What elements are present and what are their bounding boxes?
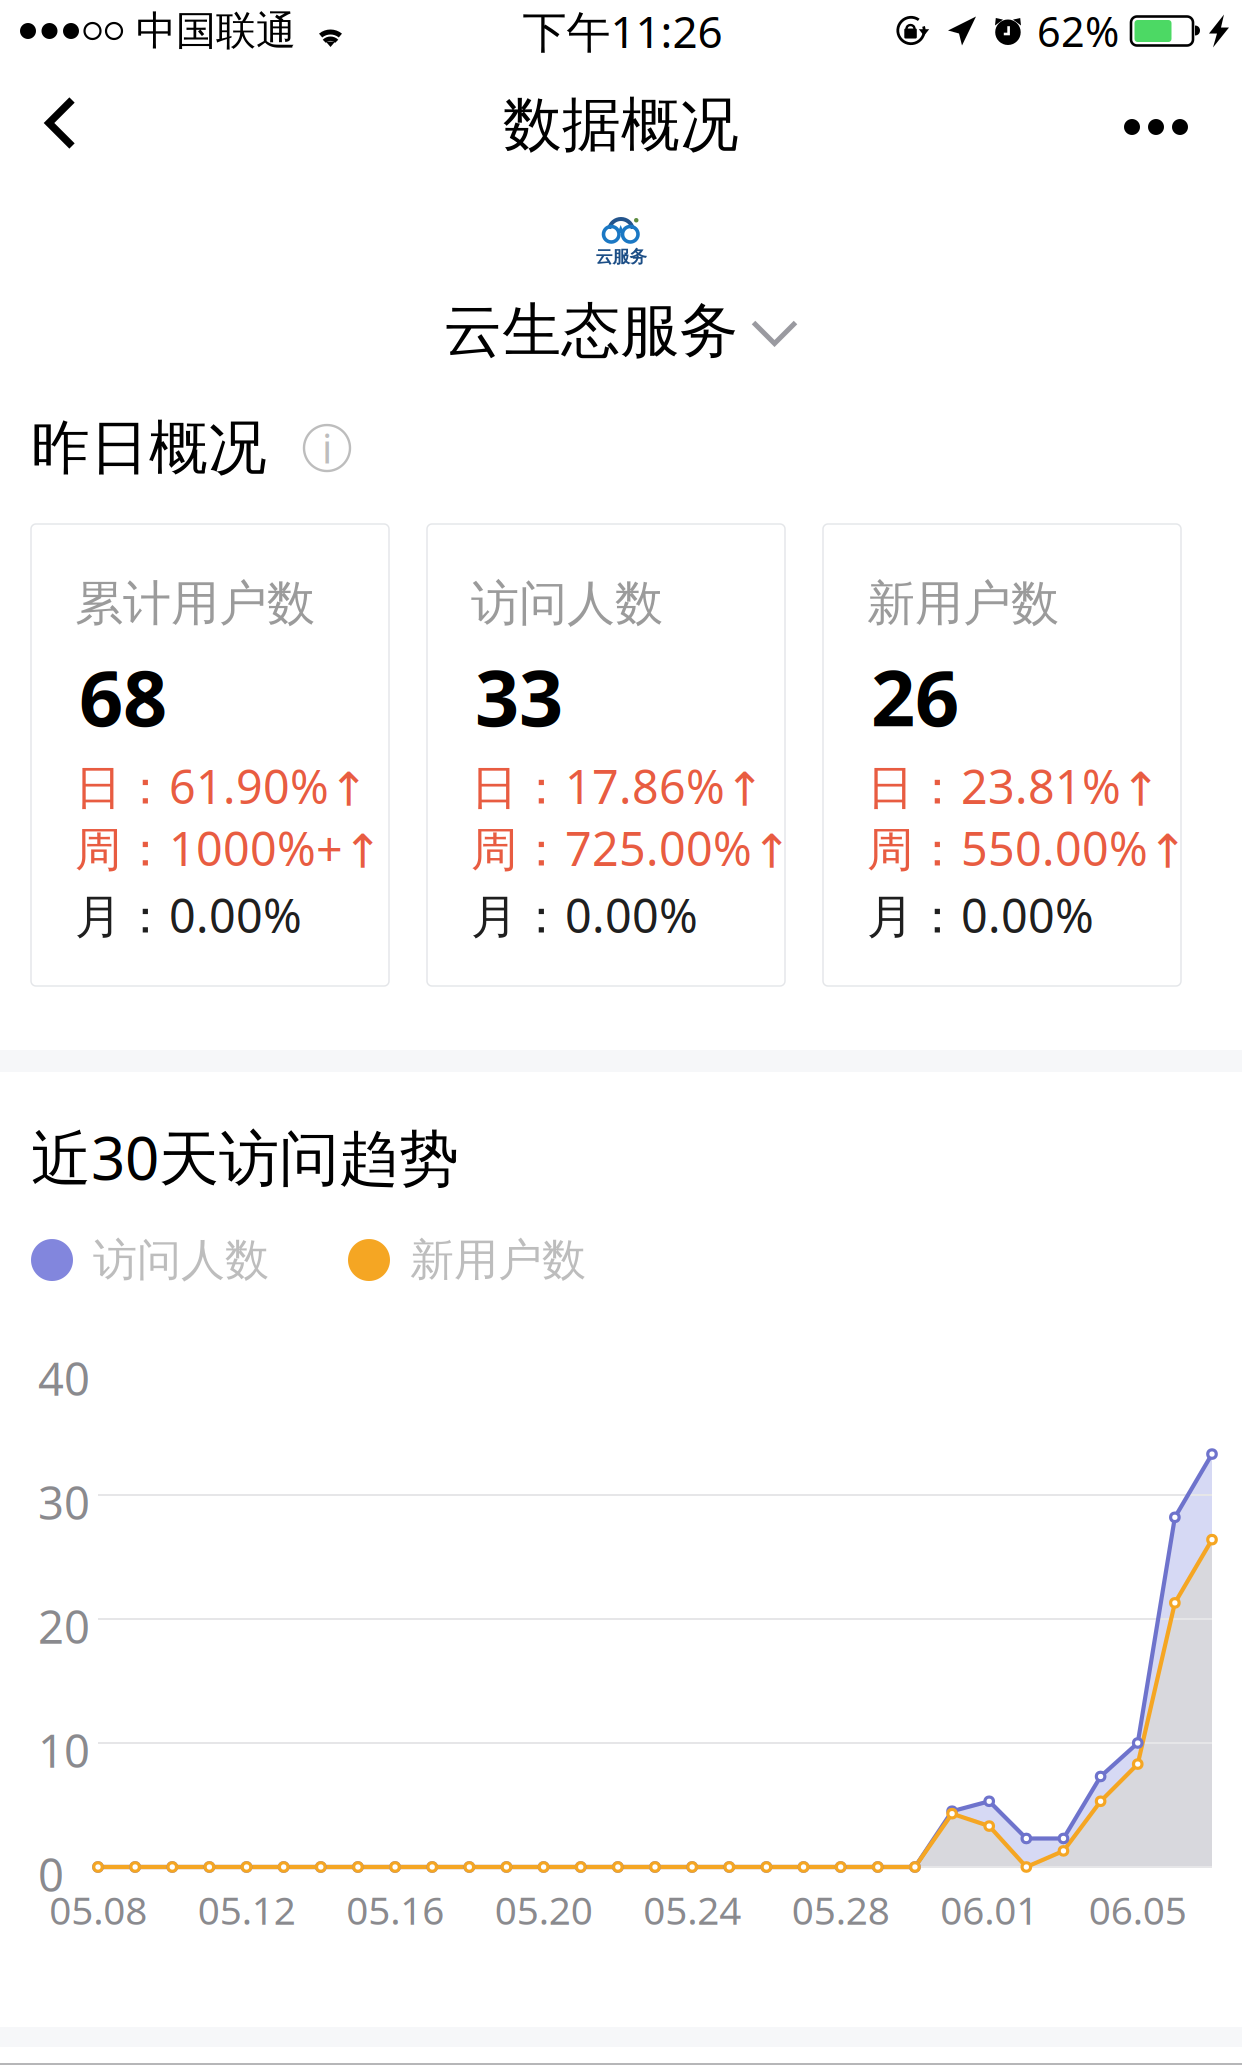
staticText: 新用户数 <box>867 574 1059 633</box>
button[interactable]: Back <box>0 62 106 166</box>
staticText: 月：0.00% <box>471 884 698 946</box>
staticText: 访问人数 <box>93 1233 269 1287</box>
staticText: 日：17.86%↑ <box>471 755 764 817</box>
staticText: 周：550.00%↑ <box>867 817 1187 879</box>
staticText: 周：725.00%↑ <box>471 817 791 879</box>
staticText: 05.20 <box>495 1884 593 1935</box>
staticText: 新用户数 <box>410 1233 586 1287</box>
staticText: 日：23.81%↑ <box>867 755 1160 817</box>
staticText: 06.01 <box>940 1884 1038 1935</box>
staticText: 数据概况 <box>503 89 739 161</box>
staticText: 下午11:26 <box>522 2 722 60</box>
staticText: 05.28 <box>792 1884 890 1935</box>
staticText: 30 <box>38 1472 90 1532</box>
staticText: 日：61.90%↑ <box>75 755 368 817</box>
staticText: 月：0.00% <box>867 884 1094 946</box>
staticText: 近30天访问趋势 <box>31 1117 459 1197</box>
staticText: 40 <box>38 1348 90 1408</box>
staticText: i <box>322 421 332 475</box>
staticText: 月：0.00% <box>75 884 302 946</box>
staticText: 68 <box>79 645 167 748</box>
staticText: 05.12 <box>198 1884 296 1935</box>
staticText: 0 <box>38 1844 64 1904</box>
staticText: 62% <box>1037 4 1119 58</box>
staticText: 05.16 <box>346 1884 444 1935</box>
staticText: 访问人数 <box>471 574 663 633</box>
staticText: 06.05 <box>1089 1884 1187 1935</box>
staticText: 33 <box>475 645 563 748</box>
button[interactable]: 云生态服务 <box>413 287 828 375</box>
staticText: 05.24 <box>643 1884 741 1935</box>
staticText: 26 <box>871 645 959 748</box>
staticText: 云生态服务 <box>443 295 738 367</box>
staticText: 05.08 <box>49 1884 147 1935</box>
staticText: 昨日概况 <box>31 412 267 484</box>
button[interactable]: More <box>1094 62 1242 166</box>
staticText: 周：1000%+↑ <box>75 817 382 879</box>
staticText: 累计用户数 <box>75 574 315 633</box>
staticText: 10 <box>38 1720 90 1780</box>
staticText: 云服务 <box>595 246 646 267</box>
staticText: 中国联通 <box>136 6 296 55</box>
staticText: 20 <box>38 1596 90 1656</box>
